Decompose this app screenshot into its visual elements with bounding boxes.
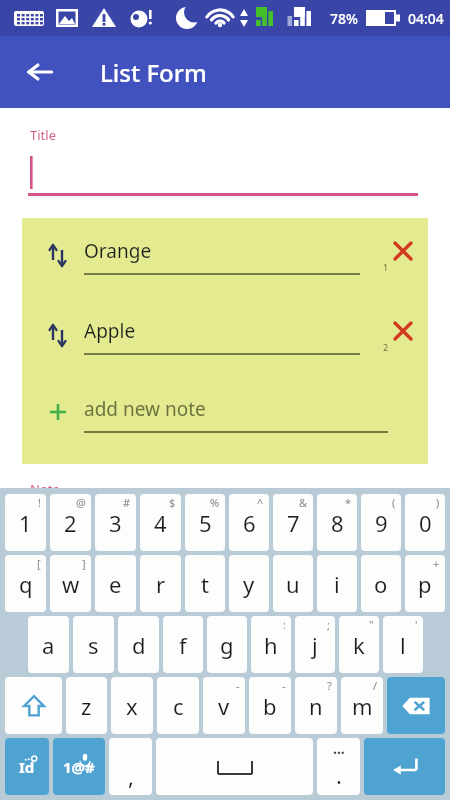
button[interactable]: 8 [317, 494, 357, 551]
button[interactable]: 3 [95, 494, 136, 551]
button[interactable]: f [163, 616, 203, 673]
staticText: % [210, 495, 220, 510]
button[interactable]: Reorder [44, 240, 72, 268]
button[interactable]: Language [5, 738, 49, 795]
button[interactable]: g [207, 616, 247, 673]
button[interactable]: Back [16, 48, 64, 96]
button[interactable]: i [317, 555, 357, 612]
button[interactable]: m [341, 677, 383, 734]
button[interactable]: l [383, 616, 423, 673]
staticText: ) [436, 495, 440, 510]
button[interactable]: 5 [185, 494, 225, 551]
staticText: ? [327, 678, 332, 693]
staticText: r [156, 569, 166, 599]
button[interactable]: d [118, 616, 159, 673]
staticText: f [179, 630, 187, 660]
button[interactable]: a [28, 616, 69, 673]
button[interactable]: Reorder [22, 316, 428, 368]
staticText: Id [19, 757, 35, 777]
button[interactable]: 7 [273, 494, 313, 551]
button[interactable]: 0 [405, 494, 445, 551]
staticText: ] [82, 556, 86, 571]
button[interactable]: 6 [229, 494, 269, 551]
staticText: w [62, 569, 80, 599]
staticText: @ [76, 495, 86, 510]
staticText: 04:04 [408, 9, 444, 28]
staticText: j [312, 630, 318, 660]
staticText: 2 [64, 508, 77, 538]
staticText: . [336, 760, 342, 790]
button[interactable]: x [111, 677, 153, 734]
staticText: 1 [19, 508, 32, 538]
staticText: s [88, 630, 99, 660]
staticText: - [282, 678, 286, 693]
staticText: t [201, 569, 209, 599]
staticText: c [173, 691, 184, 721]
staticText: add new note [84, 396, 206, 422]
button[interactable]: Enter [364, 738, 445, 795]
button[interactable]: 2 [50, 494, 91, 551]
staticText: 8 [331, 508, 344, 538]
staticText: 5 [199, 508, 212, 538]
staticText: ' [415, 617, 418, 632]
button[interactable]: o [361, 555, 401, 612]
staticText: m [352, 691, 373, 721]
staticText: 3 [109, 508, 122, 538]
button[interactable]: Shift [5, 677, 62, 734]
button[interactable]: s [73, 616, 114, 673]
button[interactable]: u [273, 555, 313, 612]
staticText: - [236, 678, 240, 693]
staticText: n [309, 691, 323, 721]
button[interactable]: Delete [386, 314, 420, 348]
button[interactable]: n [295, 677, 337, 734]
button[interactable]: add new note [22, 394, 428, 446]
button[interactable]: ... [317, 738, 360, 795]
button[interactable]: h [251, 616, 291, 673]
staticText: ; [327, 617, 330, 632]
staticText: , [128, 761, 134, 791]
button[interactable]: Reorder [44, 320, 72, 348]
staticText: + [433, 556, 440, 571]
button[interactable]: q [5, 555, 46, 612]
staticText: Note [30, 480, 60, 498]
staticText: 4 [154, 508, 167, 538]
staticText: & [299, 495, 308, 510]
button[interactable]: j [295, 616, 335, 673]
staticText: a [42, 630, 55, 660]
button[interactable]: w [50, 555, 91, 612]
button[interactable]: r [140, 555, 181, 612]
staticText: " [369, 617, 374, 632]
button[interactable]: Symbols [53, 738, 105, 795]
button[interactable]: k [339, 616, 379, 673]
button[interactable]: 4 [140, 494, 181, 551]
staticText: Title [30, 126, 56, 144]
staticText: ! [38, 495, 41, 510]
button[interactable]: e [95, 555, 136, 612]
staticText: b [263, 691, 277, 721]
staticText: # [123, 495, 131, 510]
staticText: l [400, 630, 406, 660]
staticText: ... [333, 739, 345, 758]
staticText: / [373, 678, 378, 693]
staticText: 2 [383, 341, 389, 353]
button[interactable]: b [249, 677, 291, 734]
button[interactable]: Space [156, 738, 313, 795]
button[interactable]: z [66, 677, 107, 734]
button[interactable]: v [203, 677, 245, 734]
button[interactable]: p [405, 555, 445, 612]
button[interactable]: t [185, 555, 225, 612]
button[interactable]: c [157, 677, 199, 734]
staticText: i [334, 569, 340, 599]
button[interactable]: y [229, 555, 269, 612]
staticText: e [109, 569, 122, 599]
button[interactable]: 9 [361, 494, 401, 551]
button[interactable]: Delete [386, 234, 420, 268]
button[interactable]: Save [349, 500, 429, 580]
button[interactable]: , [109, 738, 152, 795]
staticText: g [220, 630, 234, 660]
button[interactable]: Backspace [387, 677, 445, 734]
button[interactable] [0, 152, 450, 196]
staticText: 1 [383, 261, 389, 273]
button[interactable]: 1 [5, 494, 46, 551]
button[interactable]: Reorder [22, 236, 428, 288]
